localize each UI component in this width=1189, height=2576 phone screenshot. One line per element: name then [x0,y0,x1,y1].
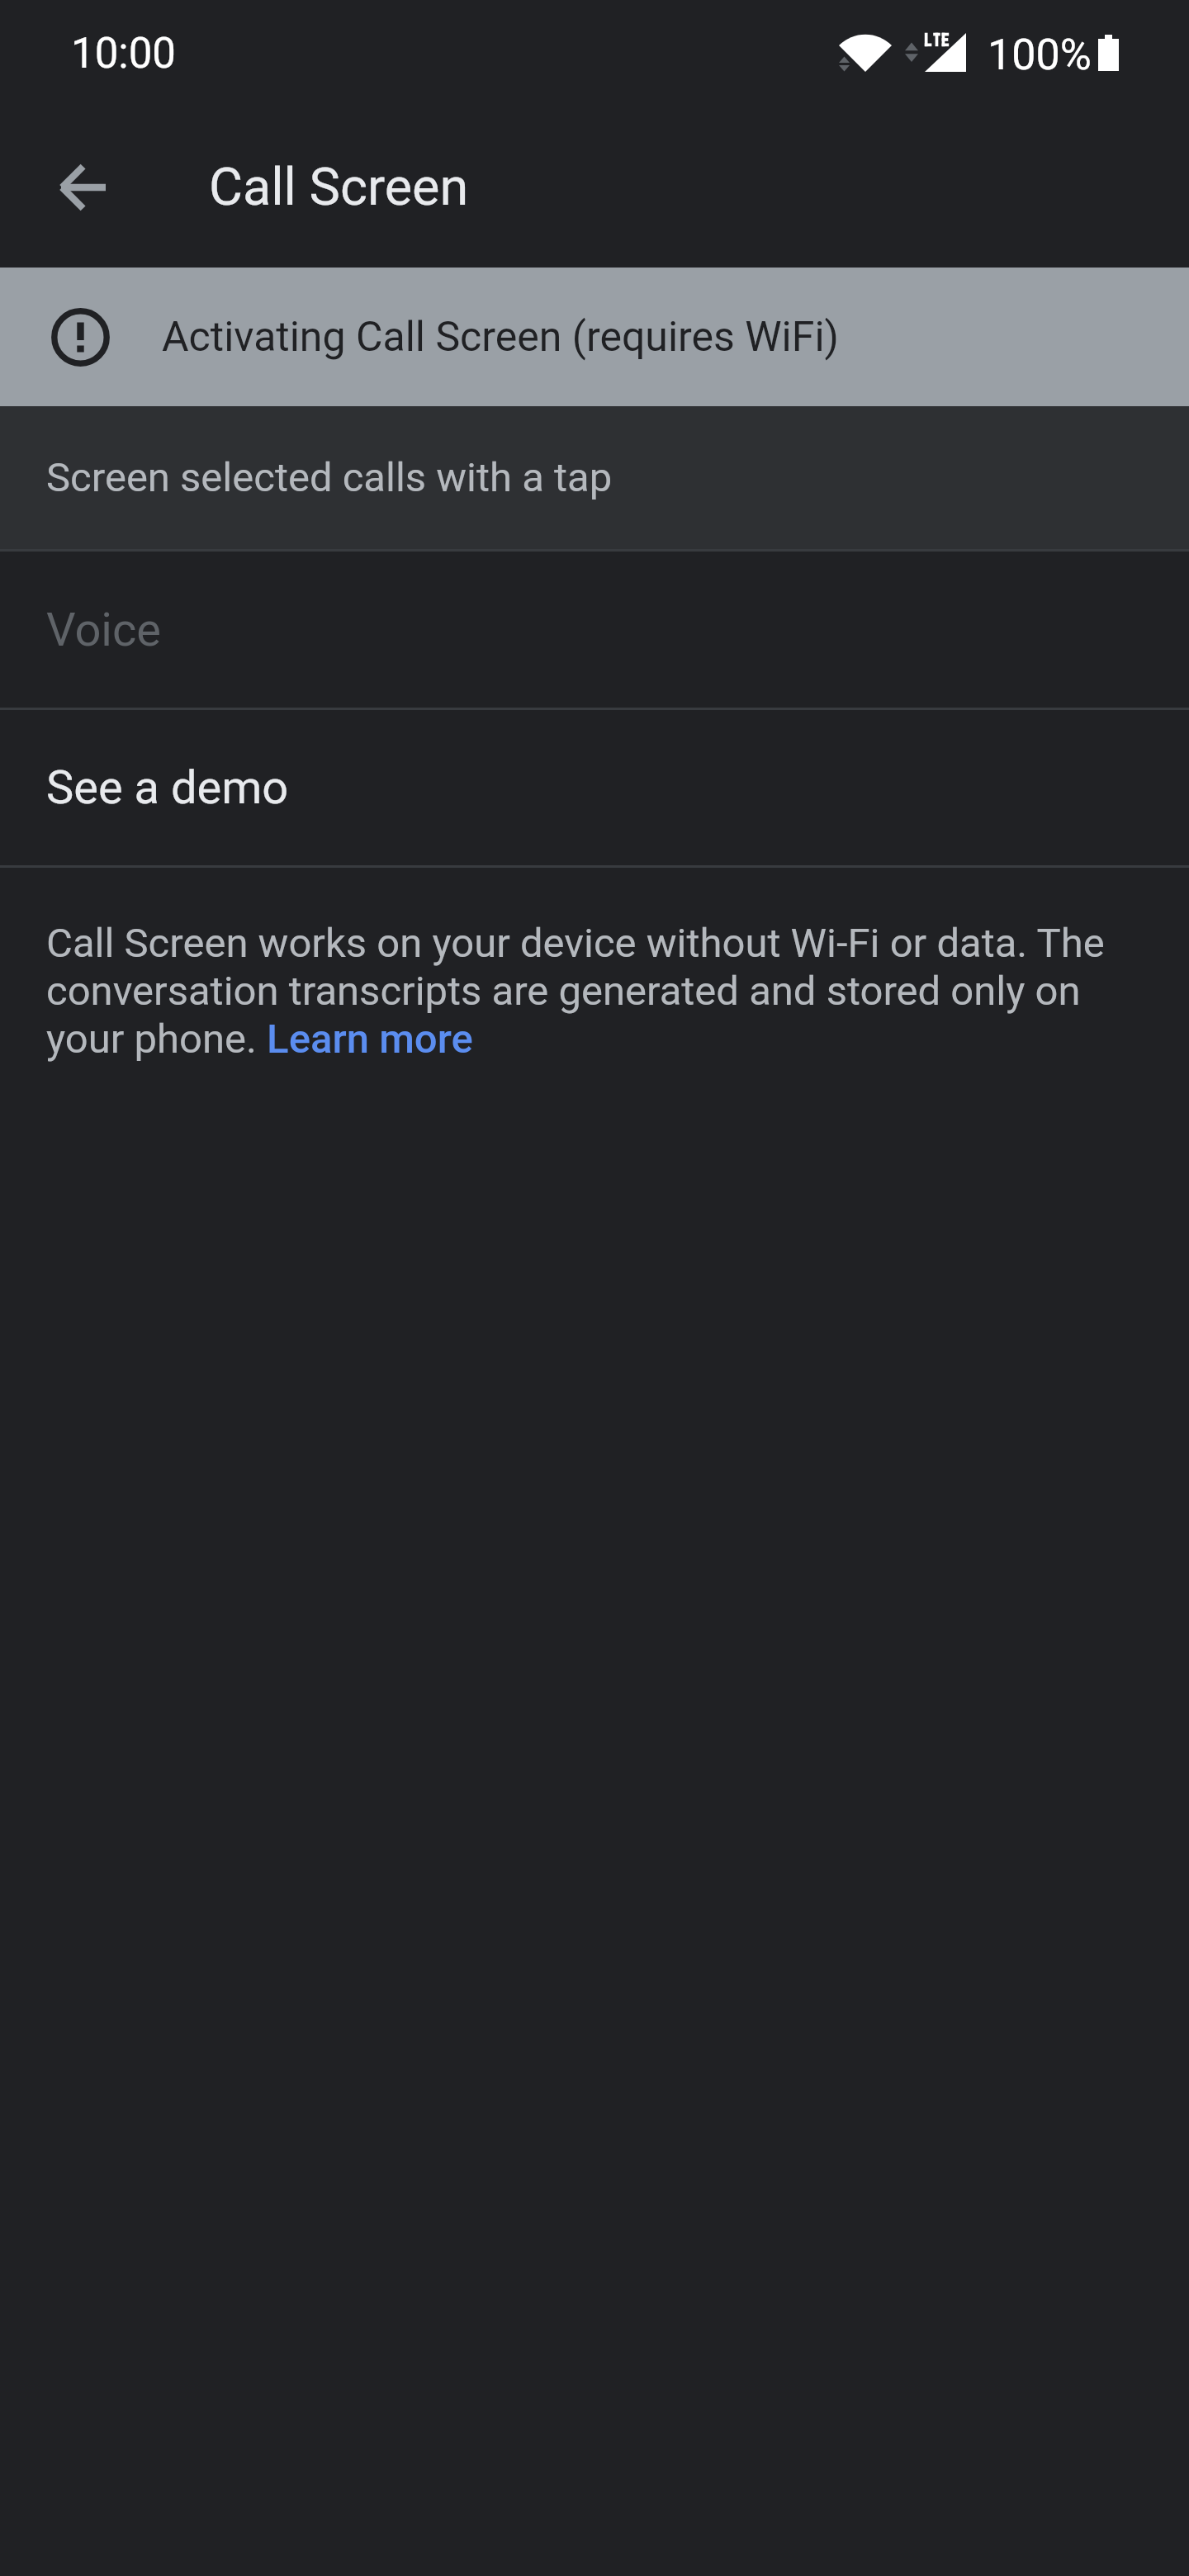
staticText: Activating Call Screen (requires WiFi) [162,313,839,362]
button[interactable]: Back [35,140,129,234]
staticText: 10:00 [71,29,177,78]
staticText: 100% [988,30,1092,80]
button[interactable]: Activating Call Screen (requires WiFi) [0,268,1189,406]
button[interactable]: Voice [0,552,1189,708]
button[interactable]: See a demo [0,710,1189,865]
staticText: Call Screen [209,157,469,218]
staticText: See a demo [46,760,289,815]
staticText: Screen selected calls with a tap [46,454,613,501]
button[interactable]: Screen selected calls with a tap [0,406,1189,549]
staticText: Voice [46,603,161,657]
staticText: Call Screen works on your device without… [46,919,1148,1063]
